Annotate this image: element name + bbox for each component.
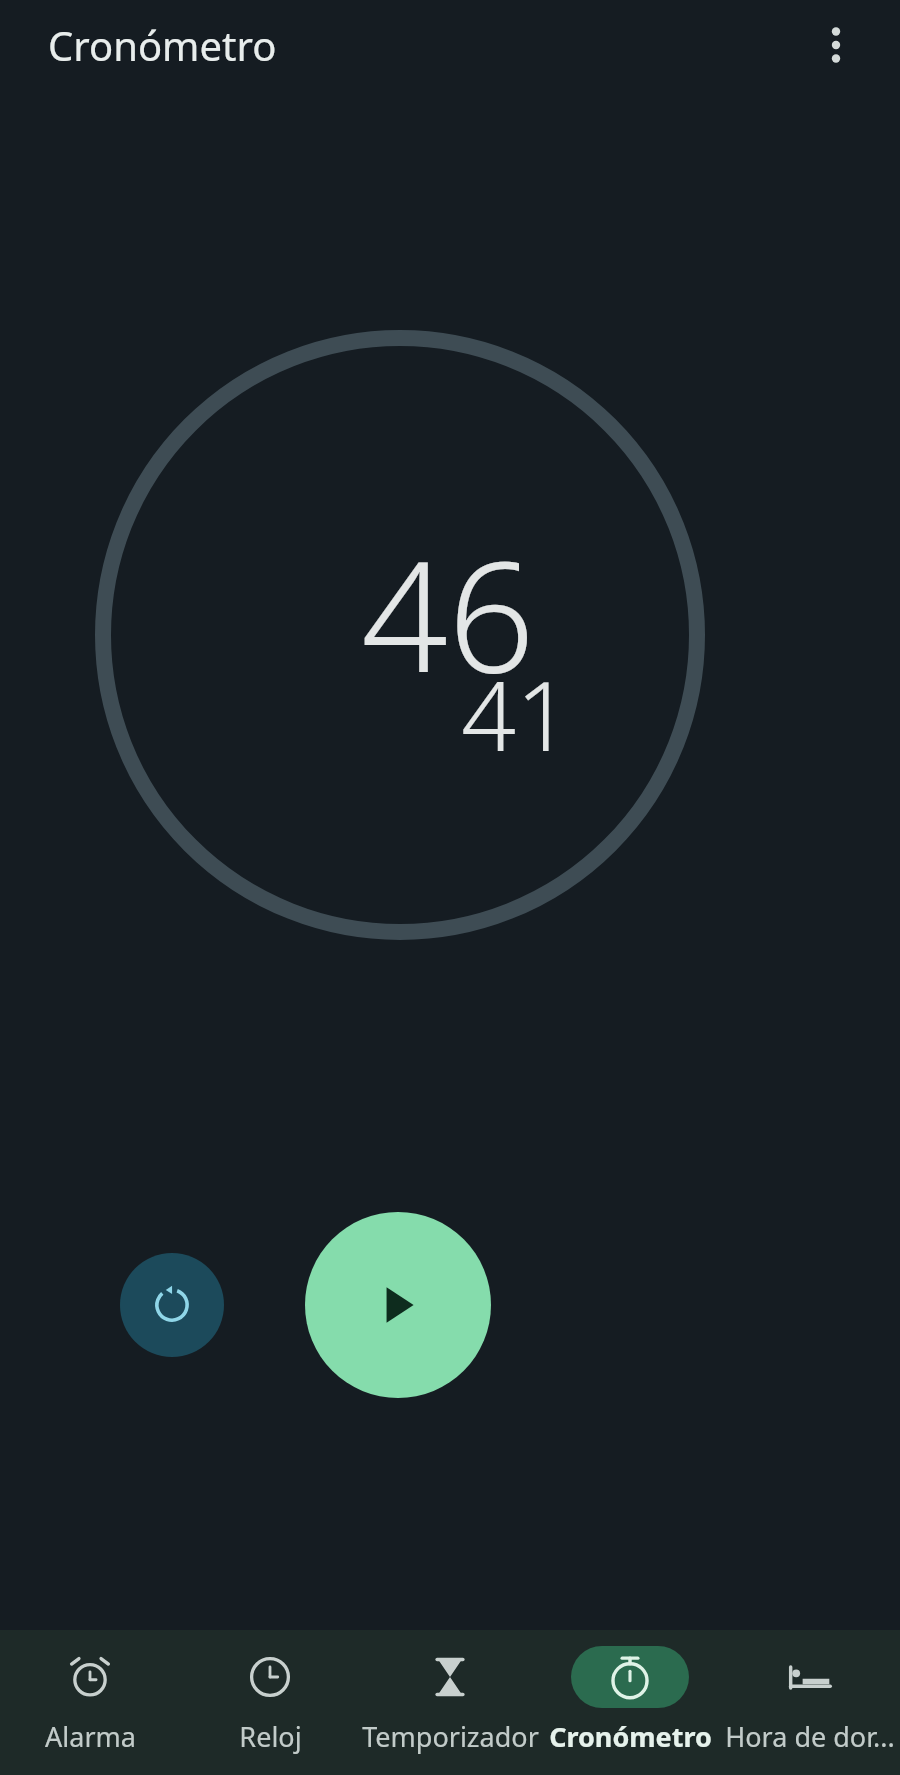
staticText: Cronómetro: [549, 1718, 712, 1755]
button[interactable]: Iniciar: [305, 1212, 491, 1398]
staticText: Temporizador: [362, 1718, 539, 1755]
staticText: 46: [361, 510, 535, 717]
staticText: Cronómetro: [48, 18, 277, 72]
staticText: Alarma: [45, 1718, 136, 1755]
button[interactable]: Temporizador: [360, 1630, 540, 1775]
staticText: Hora de dor...: [725, 1718, 895, 1755]
button[interactable]: Cronómetro: [540, 1630, 720, 1775]
button[interactable]: Más opciones: [800, 9, 872, 81]
button[interactable]: Hora de dor...: [720, 1630, 900, 1775]
button[interactable]: Alarma: [0, 1630, 180, 1775]
staticText: 41: [461, 648, 571, 779]
button[interactable]: Restablecer: [120, 1253, 224, 1357]
button[interactable]: Reloj: [180, 1630, 360, 1775]
staticText: Reloj: [239, 1718, 302, 1755]
